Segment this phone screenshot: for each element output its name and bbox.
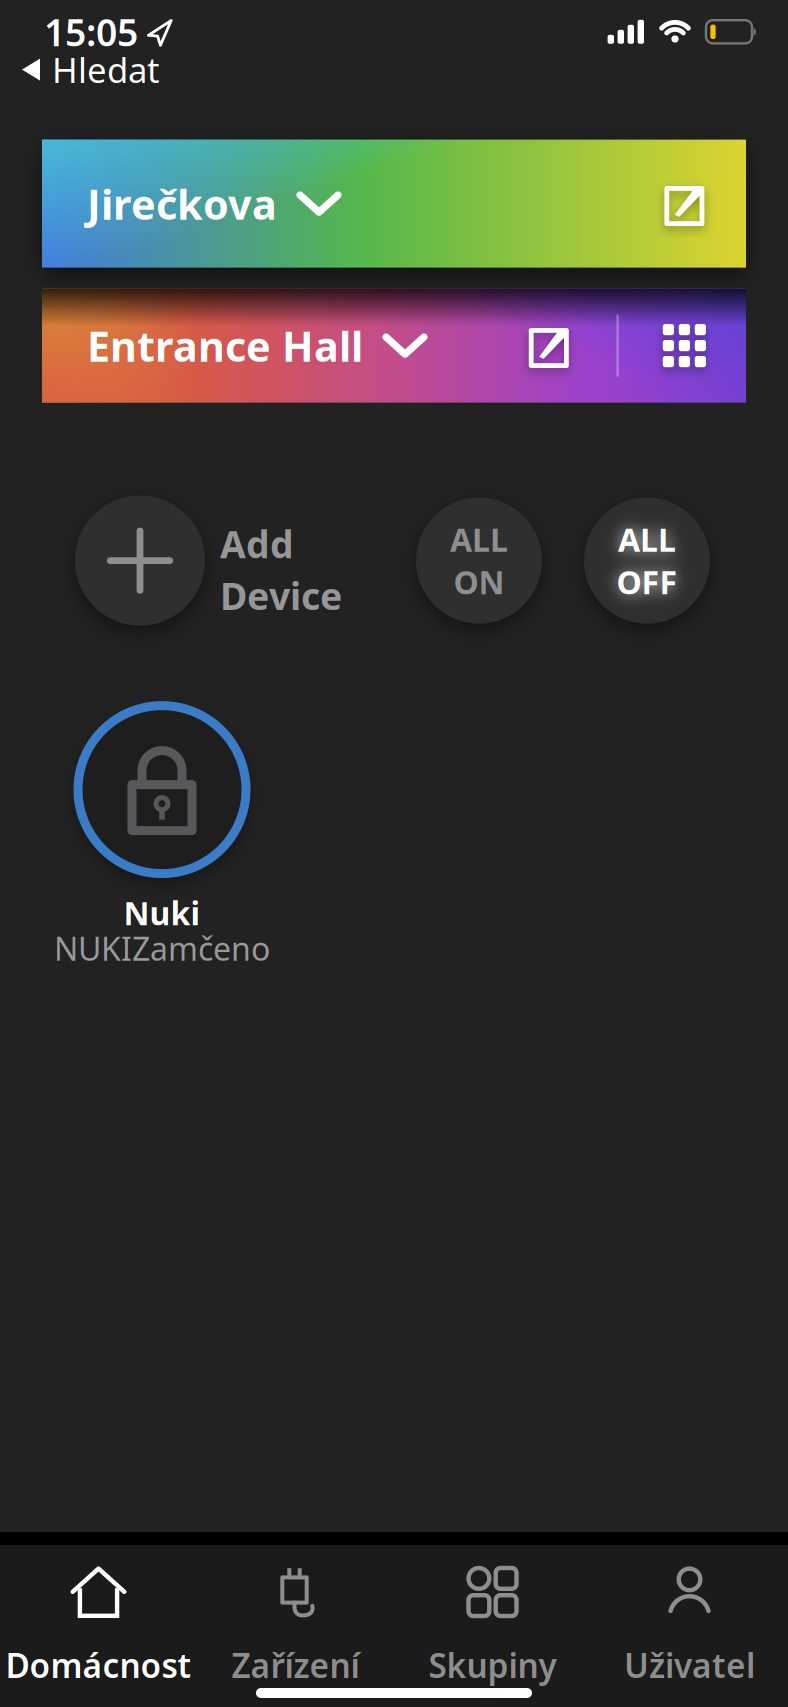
staticText: ALL <box>618 518 676 561</box>
staticText: Entrance Hall <box>87 318 363 373</box>
button[interactable]: Entrance Hall room selector <box>42 318 425 373</box>
button[interactable]: Uživatel <box>591 1567 788 1687</box>
button[interactable]: Edit Jirečkova <box>664 182 746 226</box>
staticText: Jirečkova <box>87 176 277 231</box>
staticText: 15:05 <box>44 7 138 57</box>
staticText: Zařízení <box>231 1643 359 1687</box>
staticText: Hledat <box>52 47 160 93</box>
button[interactable]: Zařízení <box>197 1567 394 1687</box>
button[interactable]: Nuki lock, locked <box>78 706 246 979</box>
staticText: ON <box>453 561 504 603</box>
button[interactable]: Domácnost <box>0 1567 197 1687</box>
button[interactable]: Jirečkova room selector <box>42 176 339 231</box>
staticText: Nuki <box>123 892 200 934</box>
button[interactable]: Skupiny <box>394 1567 591 1687</box>
button[interactable]: Entrance Hall groups grid <box>663 324 746 367</box>
button[interactable]: All on <box>416 498 542 624</box>
button[interactable]: Edit Entrance Hall <box>528 324 572 368</box>
staticText: NUKIZamčeno <box>54 927 270 970</box>
staticText: Add <box>220 519 294 569</box>
button[interactable]: All off <box>584 498 710 624</box>
staticText: ALL <box>450 518 508 561</box>
staticText: Skupiny <box>428 1643 556 1687</box>
button[interactable]: Back to Hledat <box>0 57 160 103</box>
staticText: Device <box>220 571 342 620</box>
button[interactable]: Add Device <box>75 496 342 626</box>
staticText: Domácnost <box>5 1643 191 1687</box>
staticText: OFF <box>616 561 677 603</box>
staticText: Uživatel <box>624 1643 755 1687</box>
